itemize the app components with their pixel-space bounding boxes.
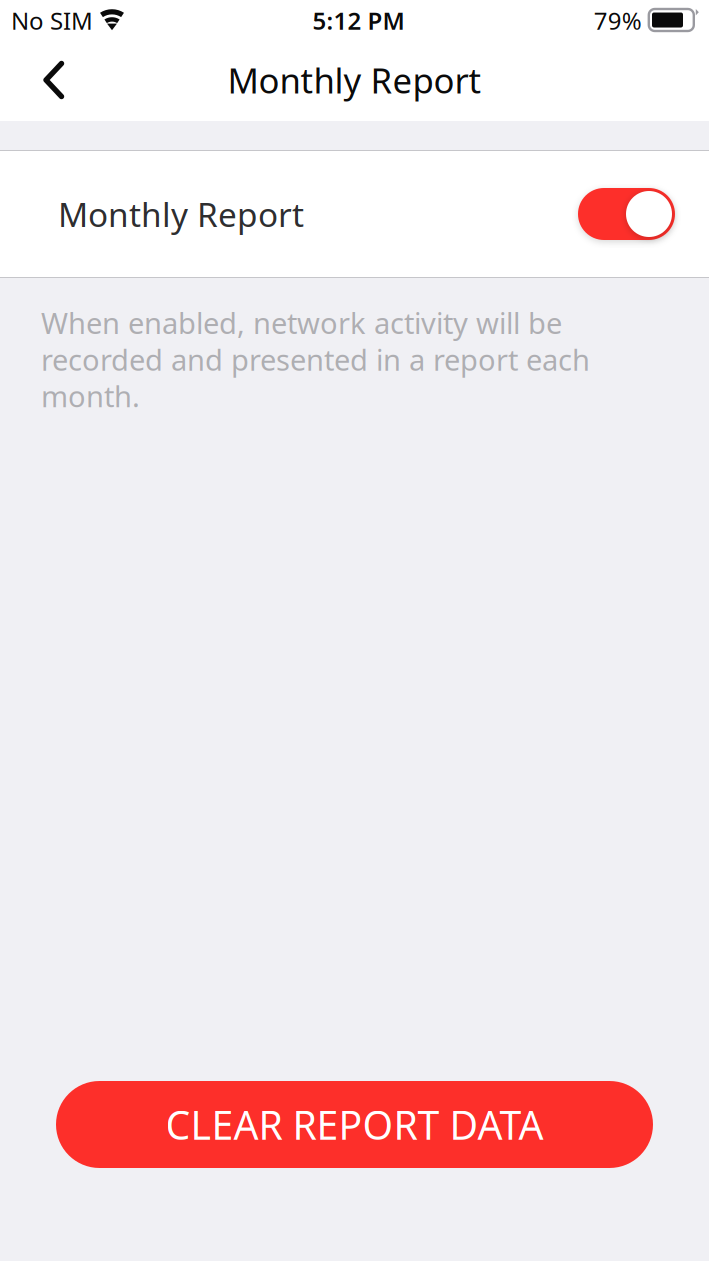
button[interactable]: Back	[0, 47, 88, 121]
staticText: 79%	[594, 5, 642, 36]
button[interactable]: CLEAR REPORT DATA	[56, 1081, 653, 1168]
staticText: Monthly Report	[227, 57, 481, 103]
staticText: When enabled, network activity will be r…	[41, 303, 590, 416]
button[interactable]: Monthly Report	[0, 151, 709, 277]
staticText: No SIM	[11, 5, 93, 36]
staticText: Monthly Report	[58, 192, 304, 236]
staticText: CLEAR REPORT DATA	[165, 1098, 543, 1151]
staticText: 5:12 PM	[312, 5, 404, 36]
